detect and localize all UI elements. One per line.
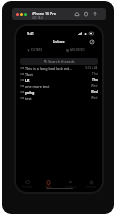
staticText: 3:13 +04 <box>85 66 98 70</box>
button[interactable]: New message <box>89 39 95 45</box>
staticText: iOS 18.4 <box>32 16 43 20</box>
button[interactable]: Close <box>16 13 19 16</box>
staticText: Wed <box>91 96 98 100</box>
button[interactable]: one more test <box>16 83 102 89</box>
staticText: Threads <box>22 185 32 189</box>
button[interactable]: Contacts <box>60 180 80 189</box>
button[interactable]: Calls <box>38 180 58 189</box>
button[interactable]: Search threads <box>20 58 98 65</box>
staticText: Wed <box>91 90 98 94</box>
button[interactable]: yuhg <box>16 89 102 95</box>
staticText: FILTERS <box>31 48 43 52</box>
button[interactable]: Minimize <box>20 13 23 16</box>
staticText: test <box>25 96 90 101</box>
staticText: LR <box>25 78 91 83</box>
staticText: This is a long bad luck wit... <box>25 66 84 71</box>
button[interactable]: Device <box>83 11 89 17</box>
button[interactable]: LR <box>16 77 102 83</box>
button[interactable]: Settings <box>81 180 101 189</box>
staticText: Inbox <box>53 39 65 45</box>
staticText: Wed <box>91 84 98 88</box>
staticText: Thu <box>92 78 98 82</box>
staticText: Thu <box>92 72 98 76</box>
button[interactable]: FILTERS <box>27 48 43 52</box>
button[interactable]: Home <box>74 11 80 17</box>
staticText: ARCHIVED <box>70 48 85 52</box>
button[interactable]: Tbot <box>16 71 102 77</box>
staticText: Settings <box>86 185 96 189</box>
staticText: 9:41 <box>27 31 34 36</box>
button[interactable]: This is a long bad luck wit... <box>16 65 102 71</box>
staticText: Search threads <box>48 59 75 64</box>
button[interactable]: test <box>16 95 102 101</box>
staticText: Calls <box>45 185 51 189</box>
button[interactable]: ARCHIVED <box>66 48 85 52</box>
staticText: Tbot <box>25 72 91 77</box>
staticText: one more test <box>25 84 90 89</box>
staticText: Contacts <box>65 185 76 189</box>
button[interactable]: Threads <box>17 180 37 189</box>
staticText: iPhone 16 Pro <box>32 11 57 16</box>
staticText: yuhg <box>25 90 90 95</box>
button[interactable]: Zoom <box>24 13 27 16</box>
button[interactable]: Share <box>92 11 98 17</box>
